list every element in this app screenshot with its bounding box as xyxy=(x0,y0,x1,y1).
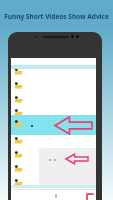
button[interactable] xyxy=(11,105,96,119)
button[interactable] xyxy=(11,133,96,147)
button[interactable] xyxy=(11,92,96,106)
button[interactable] xyxy=(11,161,96,175)
button[interactable] xyxy=(11,78,96,92)
button[interactable] xyxy=(11,64,96,78)
staticText: Funny Short Videos Show Advice xyxy=(0,12,113,21)
other: Pointer arrow xyxy=(66,154,88,164)
button[interactable] xyxy=(11,119,96,133)
other: Pointer arrow xyxy=(55,117,92,134)
button[interactable] xyxy=(11,115,96,135)
button[interactable] xyxy=(11,147,96,161)
button[interactable] xyxy=(11,175,96,189)
